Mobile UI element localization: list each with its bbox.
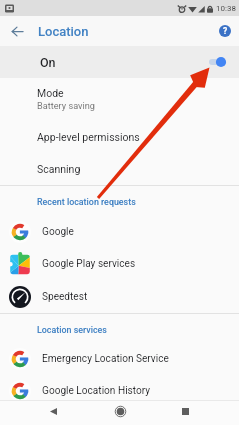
button[interactable]: Google — [0, 215, 239, 248]
button[interactable]: Mode — [0, 78, 239, 120]
button[interactable]: Emergency Location Service — [0, 343, 239, 375]
staticText: Mode — [37, 87, 64, 99]
staticText: Recent location requests — [37, 197, 136, 207]
button[interactable]: On — [0, 46, 239, 78]
staticText: 10:38 — [216, 4, 236, 13]
staticText: Emergency Location Service — [42, 353, 169, 365]
staticText: Location services — [37, 325, 107, 335]
staticText: Google Location History — [42, 385, 151, 397]
button[interactable]: Help — [215, 21, 235, 41]
staticText: App-level permissions — [37, 131, 140, 143]
staticText: Location — [38, 24, 89, 39]
button[interactable]: Recent apps — [175, 401, 195, 421]
staticText: Battery saving — [37, 100, 96, 111]
button[interactable]: Speedtest — [0, 280, 239, 313]
staticText: Scanning — [37, 163, 81, 175]
staticText: ? — [223, 26, 228, 36]
button[interactable]: Home — [110, 401, 130, 421]
staticText: On — [40, 55, 56, 70]
staticText: Speedtest — [42, 291, 88, 303]
button[interactable]: Navigate up — [6, 20, 28, 42]
button[interactable]: Google Location History — [0, 375, 239, 407]
button[interactable]: Scanning — [0, 153, 239, 185]
button[interactable]: Back — [43, 401, 63, 421]
staticText: Google — [42, 226, 74, 238]
staticText: Google Play services — [42, 258, 136, 270]
button[interactable]: Google Play services — [0, 248, 239, 280]
button[interactable]: App-level permissions — [0, 120, 239, 153]
